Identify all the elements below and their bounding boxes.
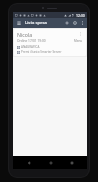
button[interactable]: Home xyxy=(45,157,56,168)
button[interactable]: Premi il tasto Smarter Server xyxy=(17,50,83,54)
button[interactable]: Card options xyxy=(78,31,83,36)
button[interactable]: Recent apps xyxy=(66,157,77,168)
staticText: Menu xyxy=(74,39,83,43)
staticText: Premi il tasto Smarter Server xyxy=(21,50,62,54)
button[interactable]: Add item xyxy=(63,19,71,27)
button[interactable]: ANAGRAFICA xyxy=(17,45,83,49)
button[interactable]: More options xyxy=(79,20,85,26)
staticText: ANAGRAFICA xyxy=(21,45,40,49)
staticText: Ordine 17/01 19:00 xyxy=(17,39,74,43)
button[interactable]: Open navigation drawer xyxy=(15,19,23,27)
button[interactable]: Nicola xyxy=(14,29,86,56)
staticText: Lista spesa xyxy=(25,20,63,26)
staticText: 12:30 xyxy=(76,13,85,18)
staticText: Nicola xyxy=(17,31,78,38)
button[interactable]: Share list xyxy=(71,19,79,27)
button[interactable]: Back xyxy=(23,157,34,168)
